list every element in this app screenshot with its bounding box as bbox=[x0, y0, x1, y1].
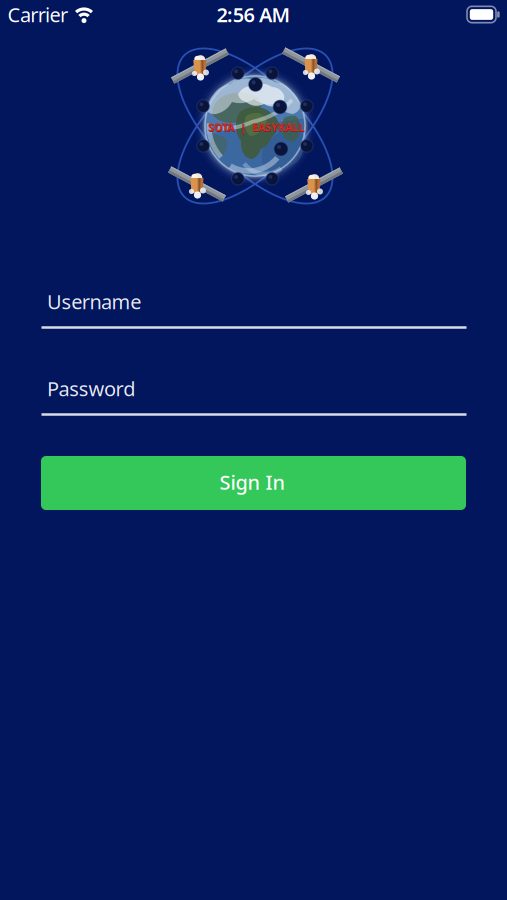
staticText: Carrier bbox=[7, 1, 68, 28]
staticText: Username bbox=[47, 288, 141, 315]
staticText: Password bbox=[47, 375, 135, 402]
staticText: 2:56 AM bbox=[216, 1, 291, 28]
staticText: Sign In bbox=[219, 469, 285, 495]
staticText: SOTA | EASYKALL bbox=[208, 120, 304, 134]
staticText: SOTA | EASYKALL bbox=[209, 121, 305, 135]
